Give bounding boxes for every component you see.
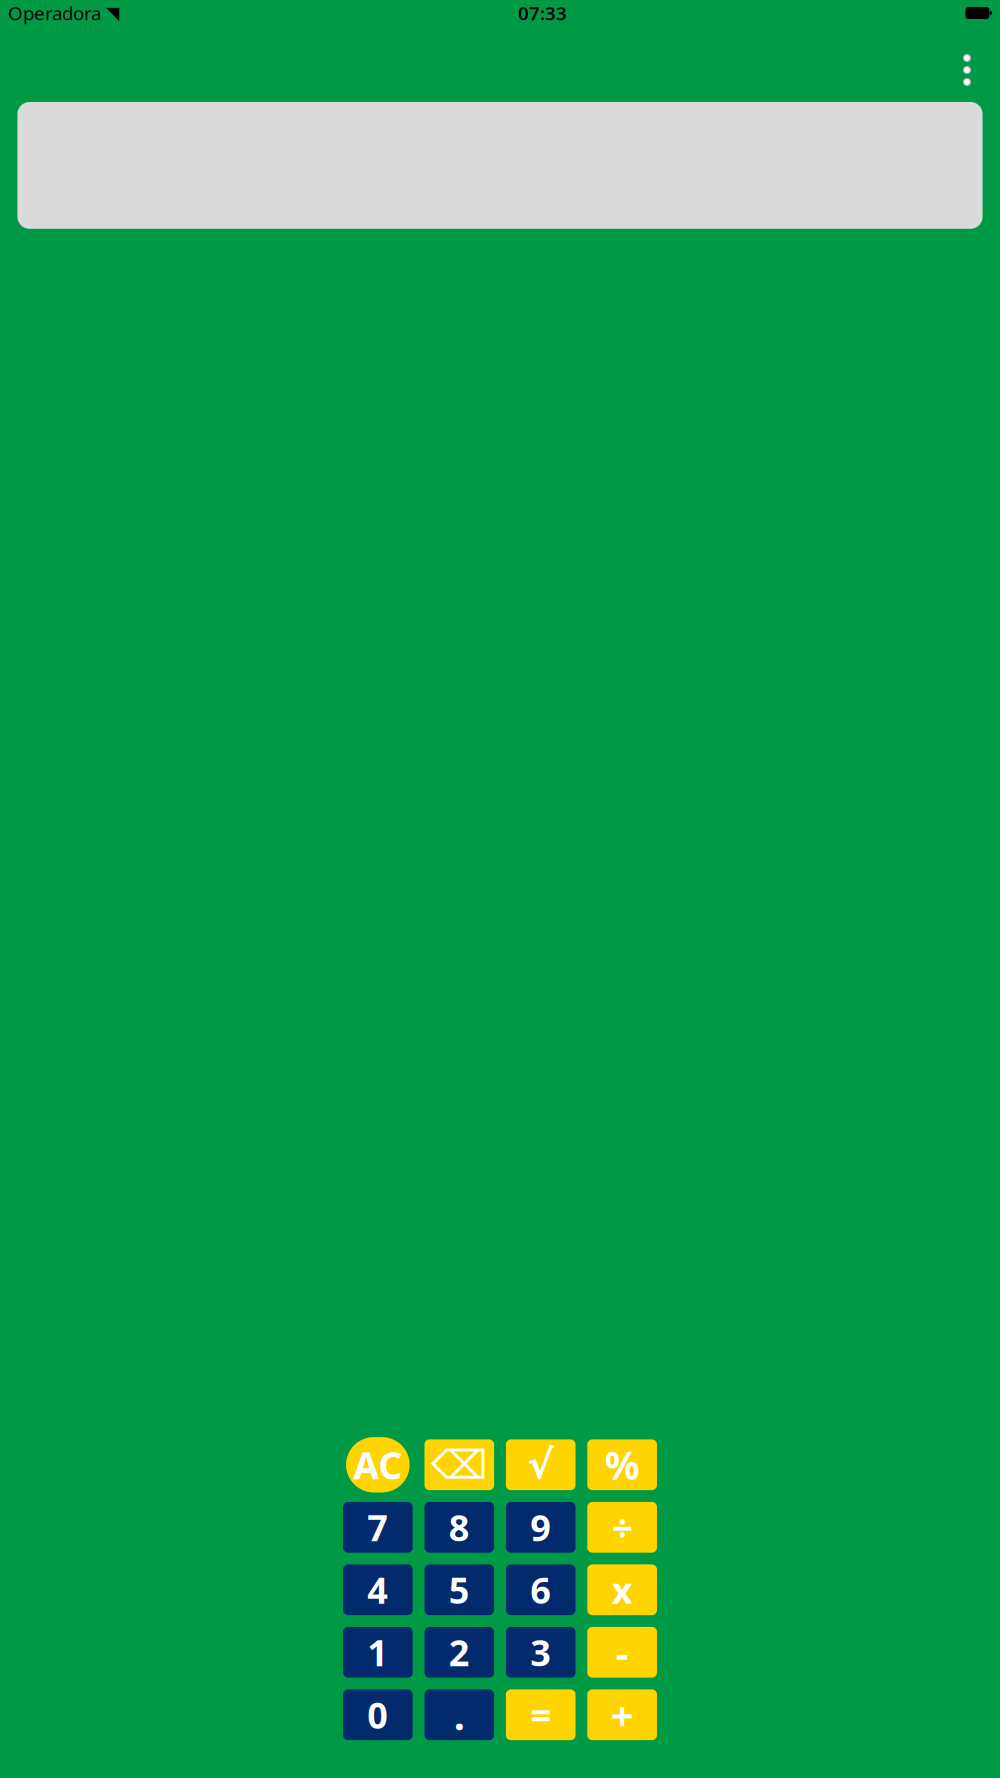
staticText: 0 [367, 1691, 388, 1739]
staticText: 3 [530, 1628, 551, 1676]
button[interactable]: 6 [506, 1564, 575, 1615]
button[interactable]: = [506, 1689, 575, 1740]
staticText: ⌫ [431, 1442, 488, 1487]
button[interactable]: 2 [424, 1627, 494, 1678]
staticText: ◥ [106, 3, 119, 23]
button[interactable]: 9 [506, 1502, 575, 1553]
button[interactable]: x [587, 1564, 657, 1615]
staticText: AC [353, 1440, 402, 1490]
button[interactable]: 4 [343, 1564, 413, 1615]
staticText: 8 [449, 1503, 470, 1551]
button[interactable]: √ [506, 1439, 575, 1490]
button[interactable]: Delete [424, 1439, 494, 1490]
button[interactable]: 3 [506, 1627, 575, 1678]
staticText: x [612, 1566, 633, 1614]
button[interactable]: 7 [343, 1502, 413, 1553]
button[interactable]: % [587, 1439, 657, 1490]
staticText: 1 [367, 1628, 388, 1676]
button[interactable]: 8 [424, 1502, 494, 1553]
staticText: . [454, 1688, 465, 1741]
staticText: % [605, 1439, 640, 1490]
button[interactable]: 0 [343, 1689, 413, 1740]
staticText: - [616, 1626, 629, 1679]
button[interactable]: - [587, 1627, 657, 1678]
staticText: 5 [449, 1566, 470, 1614]
button[interactable]: AC [346, 1437, 410, 1492]
staticText: √ [527, 1442, 554, 1487]
staticText: 9 [530, 1503, 551, 1551]
staticText: 4 [367, 1566, 388, 1614]
staticText: + [611, 1688, 634, 1741]
staticText: 7 [367, 1503, 388, 1551]
button[interactable]: . [424, 1689, 494, 1740]
button[interactable]: More options [950, 48, 984, 92]
staticText: = [530, 1690, 551, 1740]
button[interactable]: + [587, 1689, 657, 1740]
button[interactable]: ÷ [587, 1502, 657, 1553]
button[interactable]: 1 [343, 1627, 413, 1678]
staticText: 6 [530, 1566, 551, 1614]
button[interactable]: 5 [424, 1564, 494, 1615]
staticText: 2 [449, 1628, 470, 1676]
staticText: Operadora [8, 1, 101, 25]
staticText: 07:33 [518, 1, 567, 25]
staticText: ÷ [612, 1502, 633, 1552]
